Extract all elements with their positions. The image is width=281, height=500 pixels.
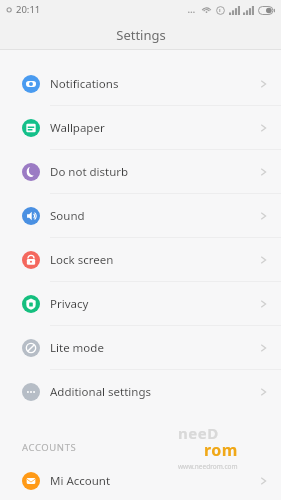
- button[interactable]: Privacy: [0, 282, 281, 325]
- staticText: Privacy: [50, 296, 89, 312]
- staticText: www.needrom.com: [178, 462, 238, 471]
- staticText: rom: [204, 439, 238, 461]
- button[interactable]: Lite mode: [0, 326, 281, 369]
- staticText: Settings: [116, 26, 166, 44]
- staticText: Notifications: [50, 76, 119, 92]
- button[interactable]: Sound: [0, 194, 281, 237]
- staticText: Lock screen: [50, 252, 114, 268]
- staticText: Wallpaper: [50, 120, 105, 136]
- staticText: Additional settings: [50, 384, 152, 400]
- button[interactable]: Do not disturb: [0, 150, 281, 193]
- staticText: ACCOUNTS: [22, 441, 77, 454]
- staticText: Do not disturb: [50, 164, 129, 180]
- button[interactable]: Lock screen: [0, 238, 281, 281]
- staticText: 20:11: [16, 3, 41, 16]
- staticText: Mi Account: [50, 473, 111, 489]
- staticText: Sound: [50, 208, 85, 224]
- staticText: neeD: [178, 423, 219, 443]
- staticText: Lite mode: [50, 340, 104, 356]
- button[interactable]: Notifications: [0, 62, 281, 105]
- button[interactable]: Wallpaper: [0, 106, 281, 149]
- button[interactable]: Additional settings: [0, 370, 281, 413]
- button[interactable]: Mi Account: [0, 461, 281, 500]
